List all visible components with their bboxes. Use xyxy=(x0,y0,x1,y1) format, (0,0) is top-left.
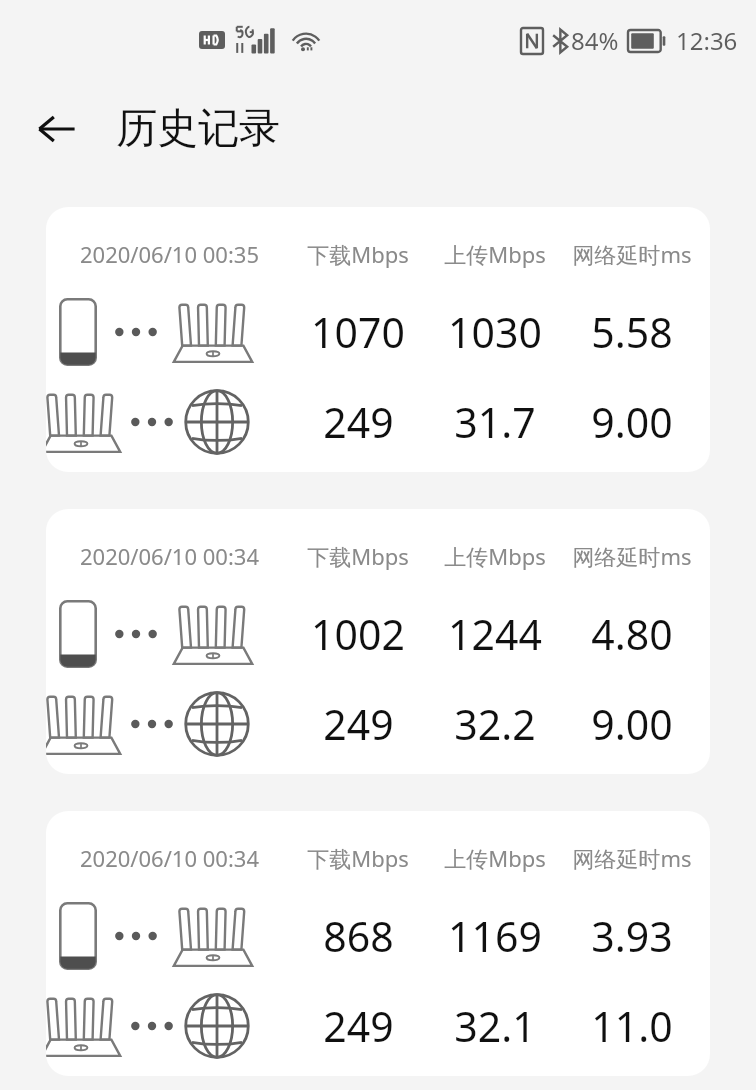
staticText: 249 xyxy=(323,394,394,450)
staticText: 网络延时ms xyxy=(572,843,692,873)
staticText: 1030 xyxy=(448,304,542,360)
staticText: 4.80 xyxy=(591,606,673,662)
staticText: 上传Mbps xyxy=(444,843,546,873)
staticText: 9.00 xyxy=(591,394,673,450)
staticText: 2020/06/10 00:34 xyxy=(80,541,259,571)
button[interactable]: 2020/06/10 00:34 xyxy=(46,509,710,774)
staticText: 31.7 xyxy=(454,394,536,450)
staticText: 1070 xyxy=(311,304,405,360)
staticText: 下载Mbps xyxy=(307,239,409,269)
staticText: 网络延时ms xyxy=(572,541,692,571)
button[interactable]: 2020/06/10 00:34 xyxy=(46,811,710,1076)
staticText: 249 xyxy=(323,998,394,1054)
staticText: 1002 xyxy=(311,606,405,662)
staticText: 9.00 xyxy=(591,696,673,752)
button[interactable]: 2020/06/10 00:35 xyxy=(46,207,710,472)
staticText: 2020/06/10 00:35 xyxy=(80,239,259,269)
staticText: 84% xyxy=(571,24,619,57)
staticText: 上传Mbps xyxy=(444,541,546,571)
staticText: 32.1 xyxy=(454,998,536,1054)
staticText: 1169 xyxy=(448,908,542,964)
staticText: 1244 xyxy=(448,606,542,662)
staticText: 下载Mbps xyxy=(307,541,409,571)
staticText: 32.2 xyxy=(454,696,536,752)
button[interactable]: Back xyxy=(26,98,88,160)
staticText: 下载Mbps xyxy=(307,843,409,873)
staticText: 868 xyxy=(323,908,394,964)
staticText: 网络延时ms xyxy=(572,239,692,269)
staticText: 12:36 xyxy=(676,24,738,57)
staticText: 5.58 xyxy=(591,304,673,360)
staticText: 11.0 xyxy=(591,998,673,1054)
staticText: 3.93 xyxy=(591,908,673,964)
staticText: 历史记录 xyxy=(116,103,280,155)
staticText: 249 xyxy=(323,696,394,752)
staticText: 上传Mbps xyxy=(444,239,546,269)
staticText: 2020/06/10 00:34 xyxy=(80,843,259,873)
